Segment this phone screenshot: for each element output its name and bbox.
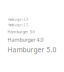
staticText: Hamburger 2.5 [7,23,28,27]
staticText: Hamburger 4.0 [7,36,43,43]
staticText: Hamburger 2.0 [7,18,28,21]
staticText: Hamburger 3.0 [7,29,34,34]
staticText: Hamburger 5.0 [7,45,56,54]
